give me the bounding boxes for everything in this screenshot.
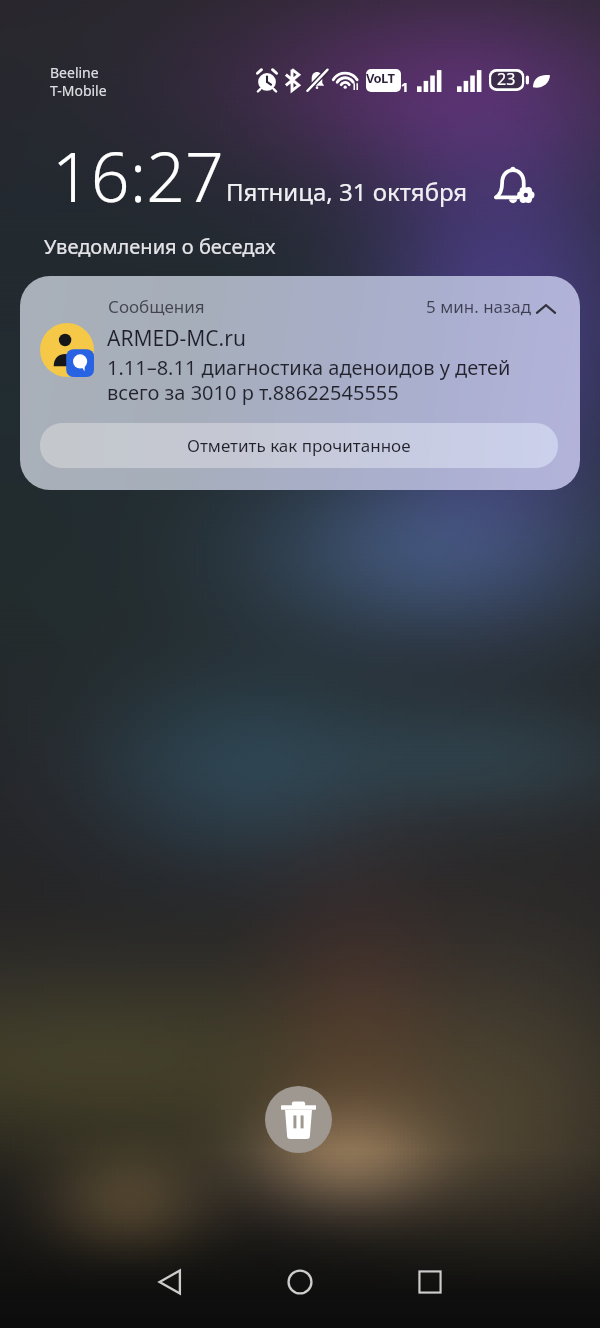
staticText: 23 (497, 68, 516, 90)
staticText: всего за 3010 р т.88622545555 (107, 379, 399, 406)
button[interactable]: Сообщения (20, 276, 580, 490)
staticText: Beeline (50, 63, 99, 82)
button[interactable]: Отметить как прочитанное (40, 423, 558, 468)
staticText: Отметить как прочитанное (187, 434, 411, 457)
staticText: Пятница, 31 октября (226, 175, 468, 208)
button[interactable]: Back (140, 1252, 200, 1312)
staticText: ARMED-MC.ru (107, 324, 246, 353)
staticText: Уведомления о беседах (44, 233, 276, 260)
staticText: Сообщения (108, 295, 205, 318)
staticText: 5 мин. назад (426, 295, 532, 318)
staticText: 1 (401, 78, 409, 96)
button[interactable]: Recent apps (400, 1252, 460, 1312)
staticText: VoLTE (366, 69, 401, 92)
button[interactable]: Clear all notifications (265, 1086, 332, 1153)
staticText: 16:27 (52, 129, 224, 222)
staticText: 1.11–8.11 диагностика аденоидов у детей (107, 354, 511, 381)
button[interactable]: Home (270, 1252, 330, 1312)
button[interactable]: Notification settings (487, 158, 543, 214)
staticText: T-Mobile (50, 81, 107, 100)
